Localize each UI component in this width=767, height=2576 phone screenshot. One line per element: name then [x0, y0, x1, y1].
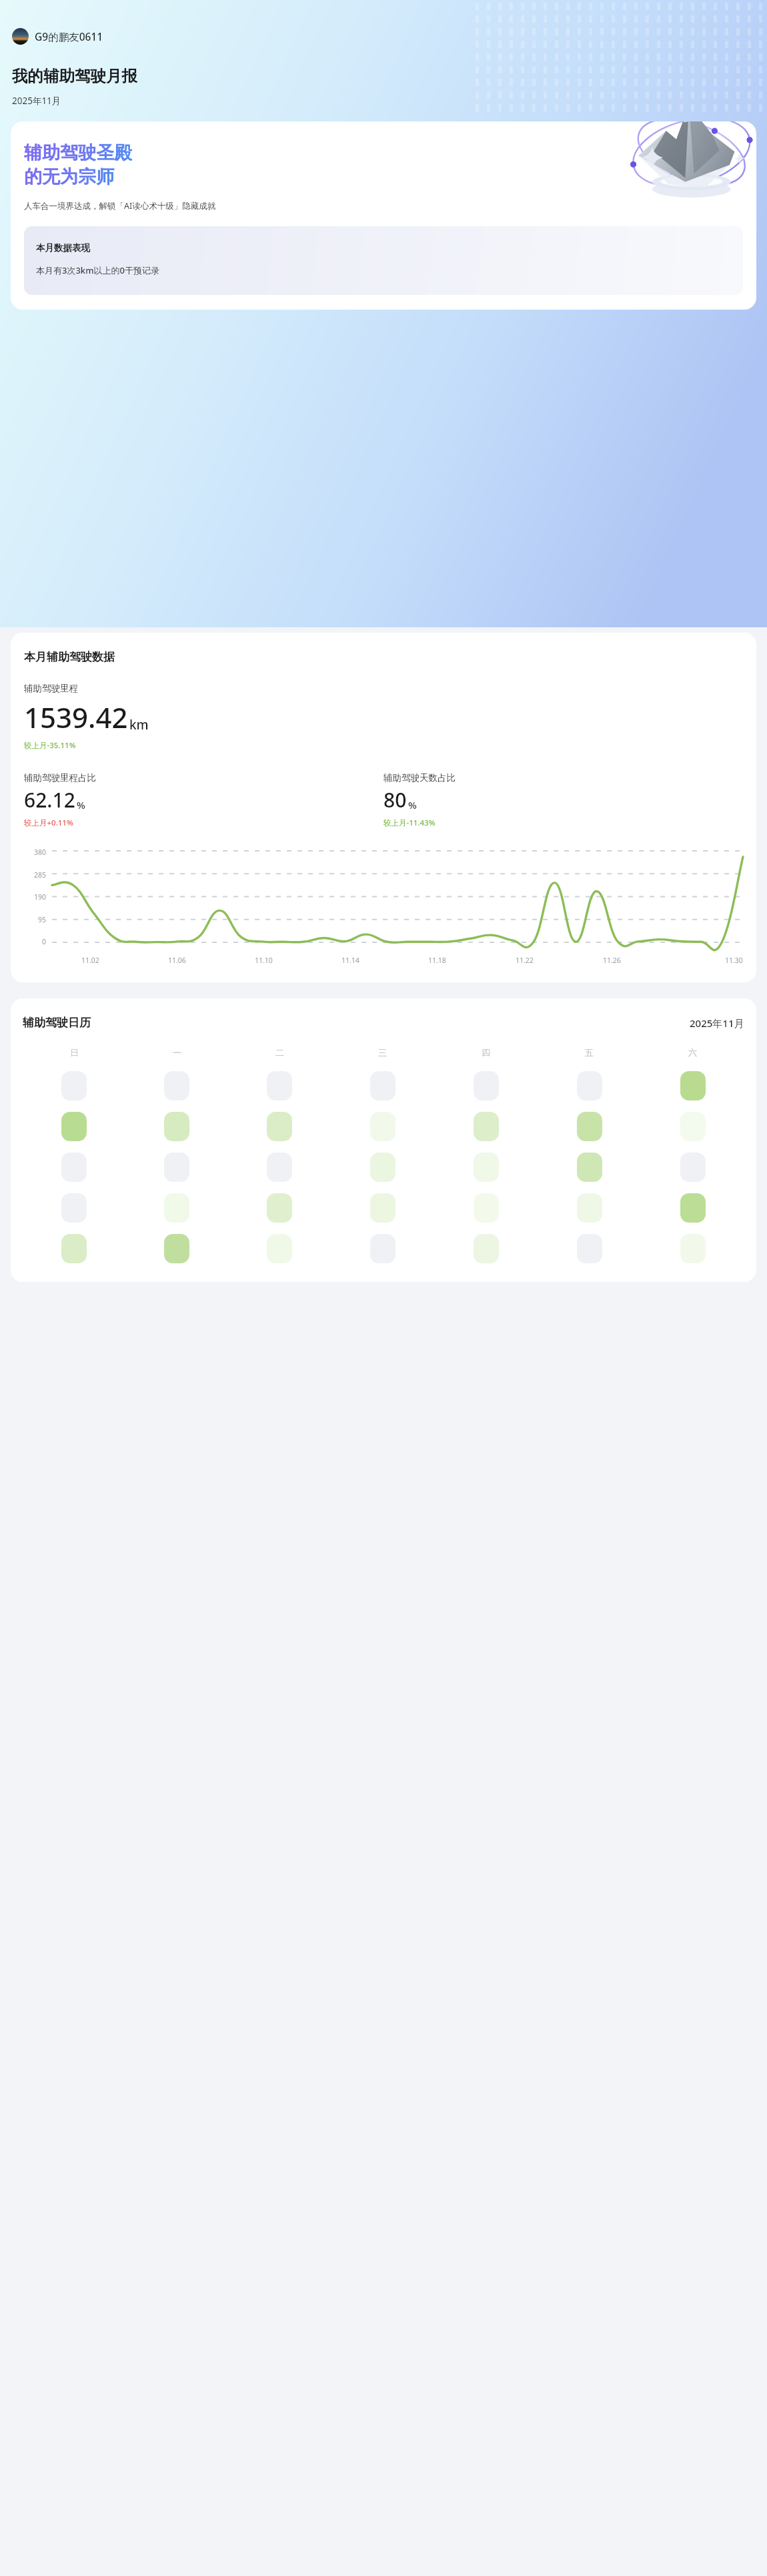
- staticText: 11.14: [341, 956, 359, 965]
- button[interactable]: G9的鹏友0611: [11, 25, 105, 47]
- button[interactable]: [267, 1234, 292, 1263]
- staticText: 11.22: [516, 956, 534, 965]
- staticText: 80: [383, 786, 407, 814]
- staticText: 380: [34, 848, 47, 857]
- staticText: km: [129, 716, 149, 733]
- staticText: 辅助驾驶里程占比: [24, 772, 96, 783]
- staticText: 我的辅助驾驶月报: [12, 66, 137, 86]
- staticText: 11.30: [725, 956, 743, 965]
- button[interactable]: [61, 1234, 87, 1263]
- button[interactable]: 本月辅助驾驶数据: [11, 633, 756, 982]
- button[interactable]: [577, 1112, 602, 1141]
- staticText: %: [408, 798, 417, 812]
- staticText: 1539.42: [24, 698, 128, 736]
- staticText: 六: [688, 1047, 697, 1058]
- staticText: 辅助驾驶日历: [23, 1016, 91, 1030]
- staticText: 2025年11月: [690, 1016, 744, 1030]
- button[interactable]: 辅助驾驶日历: [11, 998, 756, 1282]
- staticText: 较上月-35.11%: [24, 740, 76, 751]
- button[interactable]: [577, 1153, 602, 1182]
- button[interactable]: [164, 1234, 189, 1263]
- staticText: 2025年11月: [12, 95, 61, 107]
- staticText: 95: [38, 915, 47, 924]
- staticText: 日: [70, 1047, 79, 1058]
- button[interactable]: [370, 1234, 396, 1263]
- staticText: 本月辅助驾驶数据: [24, 650, 115, 664]
- button[interactable]: [370, 1153, 396, 1182]
- button[interactable]: [164, 1071, 189, 1100]
- button[interactable]: [680, 1153, 706, 1182]
- staticText: 285: [34, 870, 47, 880]
- button[interactable]: [164, 1193, 189, 1223]
- staticText: 四: [482, 1047, 490, 1058]
- staticText: 11.26: [603, 956, 621, 965]
- staticText: 辅助驾驶圣殿: [24, 141, 132, 164]
- staticText: 11.10: [255, 956, 273, 965]
- button[interactable]: [680, 1234, 706, 1263]
- staticText: %: [77, 798, 85, 812]
- button[interactable]: [164, 1112, 189, 1141]
- button[interactable]: [474, 1071, 499, 1100]
- staticText: 较上月-11.43%: [383, 818, 436, 828]
- staticText: 0: [42, 937, 47, 946]
- button[interactable]: [577, 1071, 602, 1100]
- button[interactable]: [267, 1112, 292, 1141]
- button[interactable]: [370, 1071, 396, 1100]
- staticText: 辅助驾驶天数占比: [383, 772, 456, 783]
- staticText: 本月数据表现: [36, 242, 90, 254]
- staticText: 较上月+0.11%: [24, 818, 73, 828]
- button[interactable]: [370, 1193, 396, 1223]
- button[interactable]: [164, 1153, 189, 1182]
- staticText: G9的鹏友0611: [35, 29, 103, 43]
- button[interactable]: 辅助驾驶圣殿: [11, 121, 756, 310]
- button[interactable]: [61, 1193, 87, 1223]
- button[interactable]: [474, 1234, 499, 1263]
- staticText: 11.02: [81, 956, 99, 965]
- staticText: 11.18: [428, 956, 446, 965]
- button[interactable]: [680, 1071, 706, 1100]
- button[interactable]: [61, 1112, 87, 1141]
- button[interactable]: [474, 1153, 499, 1182]
- staticText: 11.06: [168, 956, 186, 965]
- button[interactable]: [680, 1193, 706, 1223]
- button[interactable]: [61, 1153, 87, 1182]
- staticText: 本月有3次3km以上的0干预记录: [36, 264, 159, 276]
- button[interactable]: [577, 1234, 602, 1263]
- button[interactable]: [267, 1153, 292, 1182]
- button[interactable]: [577, 1193, 602, 1223]
- staticText: 的无为宗师: [24, 166, 114, 188]
- button[interactable]: [474, 1193, 499, 1223]
- staticText: 三: [378, 1047, 387, 1058]
- button[interactable]: [61, 1071, 87, 1100]
- staticText: 二: [275, 1047, 284, 1058]
- button[interactable]: [267, 1193, 292, 1223]
- button[interactable]: [474, 1112, 499, 1141]
- staticText: 一: [173, 1047, 181, 1058]
- staticText: 190: [34, 892, 47, 902]
- button[interactable]: [680, 1112, 706, 1141]
- button[interactable]: [370, 1112, 396, 1141]
- staticText: 人车合一境界达成，解锁「AI读心术十级」隐藏成就: [24, 200, 216, 212]
- staticText: 五: [585, 1047, 594, 1058]
- button[interactable]: [267, 1071, 292, 1100]
- staticText: 辅助驾驶里程: [24, 683, 78, 694]
- staticText: 62.12: [24, 786, 75, 814]
